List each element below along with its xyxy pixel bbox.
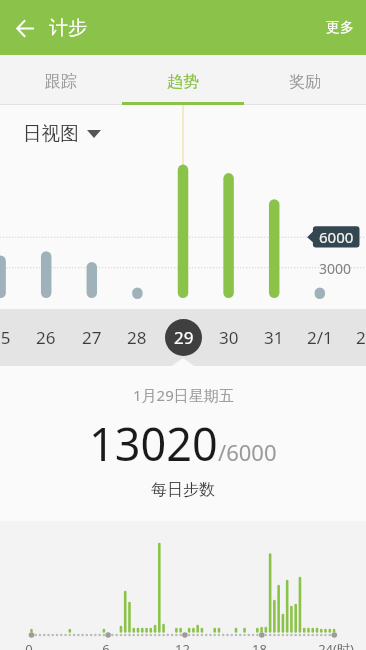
staticText: 日视图 (23, 122, 79, 145)
staticText: 0 (25, 640, 33, 650)
staticText: 12 (175, 640, 190, 650)
staticText: 30 (219, 326, 239, 349)
button[interactable]: 2/1 (298, 315, 342, 359)
staticText: 31 (264, 326, 284, 349)
button[interactable]: 25 (0, 315, 23, 359)
button[interactable]: 2/2 (347, 315, 366, 359)
staticText: 奖励 (289, 72, 321, 92)
button[interactable]: 日视图 (17, 116, 107, 151)
staticText: 24(时) (318, 640, 354, 650)
button[interactable]: 26 (24, 315, 68, 359)
staticText: 1月29日星期五 (133, 385, 234, 405)
button[interactable]: 奖励 (244, 55, 366, 105)
button[interactable]: 更多 (314, 5, 366, 51)
button[interactable]: Back (8, 11, 42, 45)
staticText: 更多 (326, 19, 354, 37)
staticText: 计步 (49, 16, 87, 40)
staticText: 26 (36, 326, 56, 349)
button[interactable]: 27 (70, 315, 114, 359)
staticText: 趋势 (167, 72, 199, 92)
staticText: 2/1 (307, 326, 333, 349)
staticText: 13020 (89, 413, 218, 474)
button[interactable]: 31 (252, 315, 296, 359)
staticText: 29 (174, 326, 194, 349)
staticText: 每日步数 (151, 480, 215, 500)
button[interactable]: 趋势 (122, 55, 244, 105)
staticText: 28 (127, 326, 147, 349)
button[interactable]: 29 (161, 315, 205, 359)
button[interactable]: 跟踪 (0, 55, 122, 105)
button[interactable]: 30 (207, 315, 251, 359)
staticText: 6000 (319, 227, 354, 247)
staticText: /6000 (218, 437, 277, 467)
staticText: 跟踪 (45, 72, 77, 92)
staticText: 18 (252, 640, 267, 650)
staticText: 27 (82, 326, 102, 349)
staticText: 6 (102, 640, 110, 650)
staticText: 25 (0, 326, 11, 349)
staticText: 3000 (319, 259, 352, 278)
button[interactable]: 28 (115, 315, 159, 359)
staticText: 2/2 (356, 326, 366, 349)
